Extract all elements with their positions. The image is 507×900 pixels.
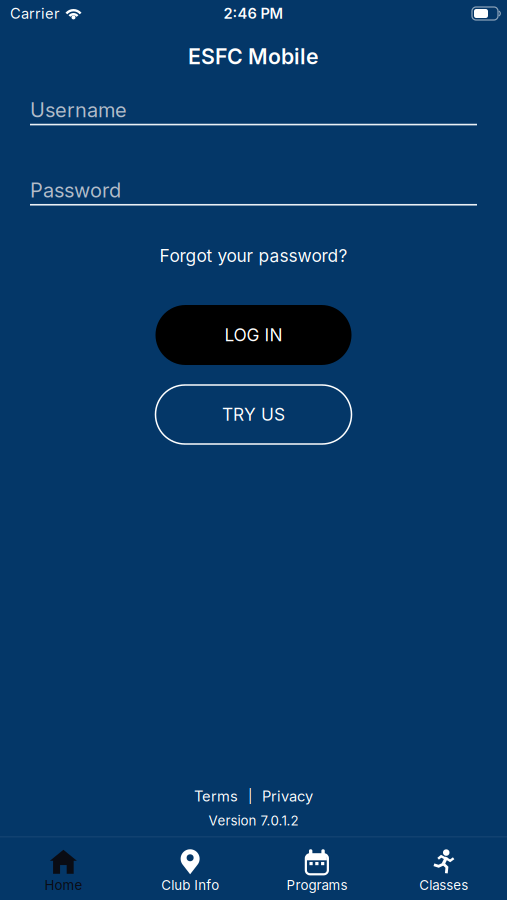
staticText: Username — [30, 98, 127, 122]
staticText: Classes — [419, 877, 468, 893]
staticText: LOG IN — [224, 325, 282, 345]
button[interactable]: Club Info — [127, 837, 254, 900]
staticText: 2:46 PM — [223, 5, 283, 22]
button[interactable]: Home — [0, 837, 127, 900]
button[interactable]: Privacy — [262, 787, 313, 805]
staticText: Terms — [194, 787, 238, 805]
staticText: Password — [30, 178, 121, 202]
staticText: Privacy — [262, 787, 313, 805]
button[interactable]: Programs — [253, 837, 380, 900]
button[interactable]: Terms — [194, 787, 238, 805]
staticText: Version 7.0.1.2 — [208, 813, 298, 828]
button[interactable]: LOG IN — [155, 305, 351, 365]
button[interactable]: Classes — [380, 837, 507, 900]
staticText: Programs — [286, 877, 347, 893]
staticText: Carrier — [10, 5, 60, 22]
staticText: TRY US — [222, 404, 285, 425]
staticText: Forgot your password? — [159, 246, 347, 266]
staticText: Club Info — [161, 877, 219, 893]
staticText: Home — [44, 877, 82, 893]
staticText: ESFC Mobile — [188, 44, 319, 69]
staticText: | — [248, 788, 252, 804]
button[interactable]: Forgot your password? — [159, 246, 347, 266]
button[interactable]: TRY US — [155, 385, 351, 444]
